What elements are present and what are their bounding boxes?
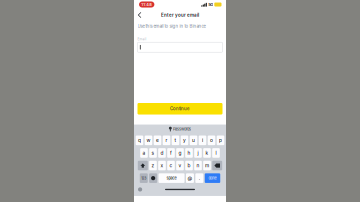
button[interactable]: d <box>158 148 166 158</box>
button[interactable]: z <box>149 161 157 170</box>
button[interactable]: . <box>195 173 203 183</box>
staticText: Continue <box>170 106 190 111</box>
staticText: 123 <box>141 176 146 180</box>
button[interactable]: c <box>167 161 175 170</box>
staticText: @ <box>187 175 192 181</box>
button[interactable]: e <box>154 136 161 145</box>
staticText: . <box>199 175 200 181</box>
staticText: g <box>178 150 181 156</box>
staticText: space <box>167 176 177 180</box>
staticText: 11:48 <box>141 2 152 7</box>
button[interactable]: Back <box>134 9 145 21</box>
staticText: done <box>208 176 216 180</box>
button[interactable]: k <box>203 148 211 158</box>
button[interactable]: f <box>167 148 175 158</box>
staticText: q <box>138 137 141 143</box>
staticText: e <box>156 137 159 143</box>
button[interactable]: n <box>194 161 202 170</box>
staticText: t <box>174 137 176 143</box>
staticText: z <box>151 163 154 168</box>
button[interactable]: Shift <box>138 161 148 170</box>
button[interactable]: Delete <box>212 161 222 170</box>
staticText: Passwords <box>173 127 191 131</box>
staticText: u <box>192 137 195 143</box>
button[interactable]: x <box>158 161 166 170</box>
staticText: Enter your email <box>161 12 199 18</box>
staticText: h <box>187 150 190 156</box>
staticText: f <box>170 150 172 156</box>
button[interactable]: i <box>199 136 206 145</box>
button[interactable]: m <box>203 161 211 170</box>
button[interactable]: u <box>190 136 197 145</box>
button[interactable]: @ <box>186 173 194 183</box>
staticText: p <box>219 137 222 143</box>
staticText: Use this email to sign in to Binance <box>137 23 205 29</box>
staticText: k <box>205 150 208 156</box>
staticText: x <box>160 163 163 168</box>
button[interactable]: h <box>185 148 193 158</box>
button[interactable]: o <box>208 136 215 145</box>
button[interactable]: Dictation <box>138 187 142 191</box>
button[interactable]: 123 <box>140 173 148 183</box>
staticText: i <box>202 137 203 143</box>
staticText: y <box>183 137 186 143</box>
button[interactable]: space <box>159 173 185 183</box>
button[interactable]: Continue <box>137 103 222 114</box>
staticText: w <box>146 137 150 143</box>
button[interactable]: a <box>140 148 148 158</box>
button[interactable]: s <box>149 148 157 158</box>
button[interactable]: j <box>194 148 202 158</box>
staticText: Email <box>137 37 146 41</box>
button[interactable]: p <box>217 136 224 145</box>
staticText: s <box>151 150 154 156</box>
staticText: m <box>205 163 209 168</box>
staticText: b <box>187 163 190 168</box>
button[interactable]: done <box>205 173 220 183</box>
button[interactable]: Emoji keyboard <box>149 173 157 183</box>
staticText: n <box>196 163 199 168</box>
staticText: o <box>210 137 213 143</box>
button[interactable]: b <box>185 161 193 170</box>
button[interactable]: l <box>212 148 220 158</box>
button[interactable]: v <box>176 161 184 170</box>
button[interactable]: Passwords <box>134 124 226 133</box>
button[interactable]: r <box>163 136 170 145</box>
staticText: d <box>160 150 163 156</box>
staticText: c <box>169 163 172 168</box>
staticText: 5G <box>208 2 213 7</box>
staticText: a <box>142 150 145 156</box>
button[interactable]: g <box>176 148 184 158</box>
staticText: v <box>178 163 181 168</box>
button[interactable]: w <box>145 136 152 145</box>
button[interactable]: q <box>136 136 143 145</box>
button[interactable]: t <box>172 136 179 145</box>
staticText: r <box>165 137 167 143</box>
button[interactable]: y <box>181 136 188 145</box>
